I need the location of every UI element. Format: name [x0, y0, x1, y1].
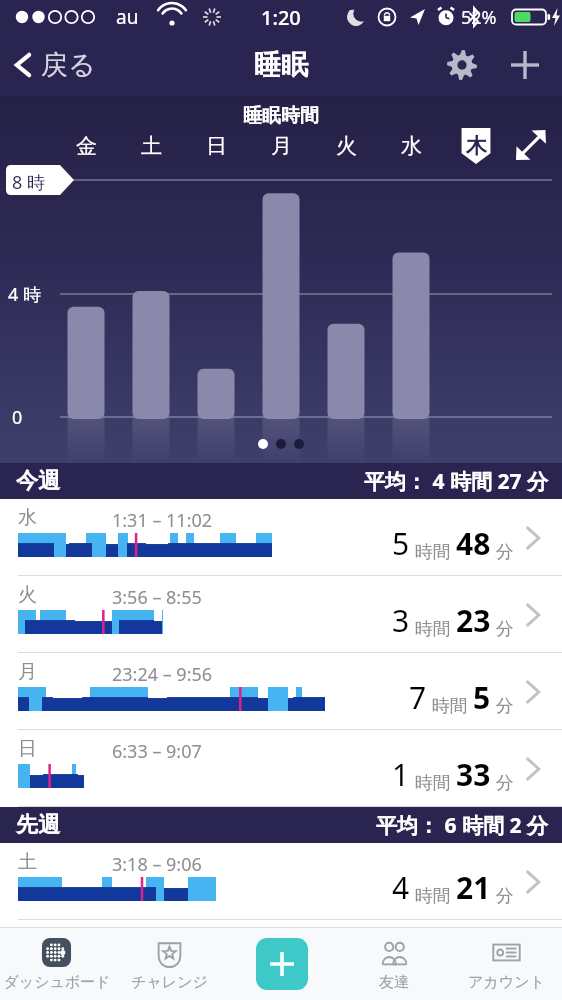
staticText: 睡眠 — [254, 48, 308, 82]
staticText: 3:18 – 9:06 — [112, 852, 202, 877]
staticText: 時間 — [410, 770, 456, 795]
staticText: 平均： 4 時間 27 分 — [364, 467, 548, 496]
button[interactable]: 木 — [454, 128, 498, 164]
staticText: 月 — [271, 133, 292, 159]
staticText: 金 — [76, 133, 97, 159]
staticText: 分 — [491, 770, 514, 795]
other: Details — [516, 865, 550, 899]
staticText: 火 — [18, 583, 37, 607]
staticText: 分 — [491, 883, 514, 908]
staticText: 4 — [392, 867, 410, 908]
button[interactable]: 先週 — [0, 807, 562, 843]
staticText: 52% — [461, 5, 497, 30]
staticText: 木 — [466, 133, 487, 159]
staticText: 4 時 — [8, 282, 41, 307]
staticText: 分 — [491, 693, 514, 718]
staticText: ダッシュボード — [3, 973, 111, 992]
staticText: 分 — [491, 616, 514, 641]
button[interactable]: 日 — [194, 128, 238, 164]
staticText: 先週 — [16, 811, 60, 839]
staticText: 1:20 — [261, 4, 301, 31]
button[interactable]: Settings — [440, 43, 484, 87]
staticText: 土 — [18, 850, 37, 874]
button[interactable]: 戻る — [0, 48, 108, 82]
staticText: 分 — [491, 539, 514, 564]
button[interactable]: 月 — [0, 653, 562, 730]
staticText: 日 — [206, 133, 227, 159]
staticText: 平均： 6 時間 2 分 — [376, 811, 548, 840]
button[interactable]: 火 — [324, 128, 368, 164]
staticText: 23:24 – 9:56 — [112, 662, 213, 687]
button[interactable]: Expand chart — [508, 122, 554, 168]
staticText: 今週 — [16, 467, 60, 495]
other: Details — [516, 752, 550, 786]
button[interactable]: アカウント — [450, 927, 562, 1000]
button[interactable]: ダッシュボード — [0, 927, 113, 1000]
staticText: 時間 — [410, 616, 456, 641]
staticText: 5 — [392, 523, 410, 564]
other: Details — [516, 598, 550, 632]
button[interactable]: 金 — [64, 128, 108, 164]
staticText: 戻る — [41, 48, 96, 82]
staticText: 時間 — [410, 883, 456, 908]
staticText: 7 — [409, 677, 427, 718]
staticText: 6:33 – 9:07 — [112, 739, 202, 764]
staticText: 3:56 – 8:55 — [112, 585, 202, 610]
staticText: 8 時 — [12, 170, 45, 195]
staticText: 1 — [392, 754, 410, 795]
button[interactable]: Add — [502, 42, 548, 88]
staticText: 48 — [456, 523, 491, 564]
staticText: 時間 — [427, 693, 473, 718]
button[interactable]: 土 — [129, 128, 173, 164]
staticText: 3 — [392, 600, 410, 641]
button[interactable]: 水 — [0, 499, 562, 576]
button[interactable]: 今週 — [0, 463, 562, 499]
staticText: チャレンジ — [131, 973, 208, 992]
staticText: 月 — [18, 660, 37, 684]
staticText: 0 — [12, 405, 23, 430]
staticText: 水 — [18, 506, 37, 530]
button[interactable]: Add — [226, 927, 338, 1000]
staticText: au — [116, 4, 139, 30]
button[interactable]: 水 — [389, 128, 433, 164]
staticText: 時間 — [410, 539, 456, 564]
button[interactable]: 月 — [259, 128, 303, 164]
other: Details — [516, 521, 550, 555]
staticText: 友達 — [379, 973, 409, 992]
staticText: 睡眠時間 — [243, 104, 319, 128]
staticText: アカウント — [468, 973, 545, 992]
staticText: 土 — [141, 133, 162, 159]
staticText: 火 — [336, 133, 357, 159]
button[interactable]: 火 — [0, 576, 562, 653]
staticText: 水 — [401, 133, 422, 159]
staticText: 5 — [473, 677, 491, 718]
button[interactable]: 日 — [0, 730, 562, 807]
staticText: 23 — [456, 600, 491, 641]
button[interactable]: 友達 — [338, 927, 450, 1000]
staticText: 21 — [456, 867, 491, 908]
other: Details — [516, 675, 550, 709]
button[interactable]: チャレンジ — [113, 927, 226, 1000]
staticText: 33 — [456, 754, 491, 795]
staticText: 日 — [18, 737, 37, 761]
staticText: 1:31 – 11:02 — [112, 508, 213, 533]
button[interactable]: 土 — [0, 843, 562, 920]
